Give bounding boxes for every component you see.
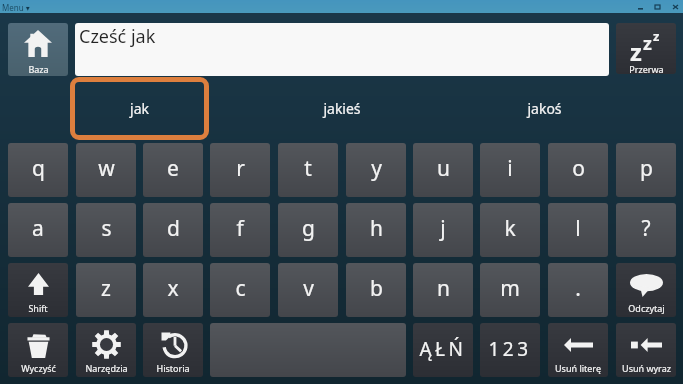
button[interactable]: c — [210, 263, 270, 317]
staticText: Historia — [156, 362, 190, 374]
button[interactable]: g — [278, 203, 338, 257]
button[interactable]: j — [413, 203, 473, 257]
staticText: Narzędzia — [85, 362, 128, 374]
button[interactable]: 123 — [480, 323, 540, 377]
button[interactable]: q — [8, 143, 68, 197]
button[interactable]: n — [413, 263, 473, 317]
button[interactable]: Narzędzia — [76, 323, 136, 377]
button[interactable]: Historia — [143, 323, 203, 377]
staticText: c — [235, 274, 246, 303]
staticText: z — [101, 274, 111, 303]
button[interactable]: y — [346, 143, 406, 197]
staticText: jakoś — [527, 99, 562, 118]
staticText: Wyczyść — [21, 362, 56, 374]
staticText: q — [32, 154, 45, 183]
staticText: m — [500, 274, 520, 303]
button[interactable]: a — [8, 203, 68, 257]
button[interactable]: Przerwa — [616, 23, 676, 74]
staticText: Menu ▾ — [2, 2, 30, 13]
staticText: Usuń wyraz — [622, 362, 671, 374]
staticText: f — [236, 214, 244, 243]
staticText: p — [640, 154, 653, 183]
staticText: z — [643, 31, 652, 56]
staticText: z — [653, 27, 660, 45]
button[interactable]: i — [480, 143, 540, 197]
staticText: . — [575, 274, 581, 303]
button[interactable]: Usuń wyraz — [616, 323, 676, 377]
staticText: r — [236, 154, 245, 183]
button[interactable]: m — [480, 263, 540, 317]
button[interactable]: Usuń literę — [548, 323, 608, 377]
button[interactable]: Baza — [8, 23, 68, 76]
staticText: 123 — [488, 336, 532, 362]
staticText: Cześć jak — [79, 24, 156, 49]
staticText: Baza — [28, 63, 49, 75]
staticText: jak — [130, 99, 149, 118]
button[interactable]: Odczytaj — [616, 263, 676, 317]
staticText: Shift — [28, 302, 48, 314]
staticText: j — [440, 214, 446, 243]
button[interactable]: b — [346, 263, 406, 317]
staticText: h — [370, 214, 383, 243]
button[interactable]: v — [278, 263, 338, 317]
staticText: w — [98, 154, 115, 183]
staticText: u — [437, 154, 450, 183]
button[interactable]: Minimize — [633, 0, 649, 13]
staticText: x — [167, 274, 179, 303]
button[interactable]: h — [346, 203, 406, 257]
staticText: k — [504, 214, 516, 243]
staticText: i — [507, 154, 513, 183]
button[interactable]: Wyczyść — [8, 323, 68, 377]
button[interactable]: ĄŁŃ — [413, 323, 473, 377]
staticText: y — [371, 154, 382, 183]
button[interactable]: . — [548, 263, 608, 317]
staticText: jakieś — [323, 99, 361, 118]
button[interactable]: d — [143, 203, 203, 257]
staticText: e — [167, 154, 179, 183]
button[interactable]: Maximize — [650, 0, 666, 13]
button[interactable]: ? — [616, 203, 676, 257]
staticText: v — [303, 274, 314, 303]
staticText: z — [630, 35, 642, 68]
button[interactable]: o — [548, 143, 608, 197]
staticText: n — [437, 274, 450, 303]
button[interactable]: s — [76, 203, 136, 257]
staticText: o — [572, 154, 585, 183]
button[interactable]: l — [548, 203, 608, 257]
button[interactable]: x — [143, 263, 203, 317]
button[interactable]: r — [210, 143, 270, 197]
button[interactable]: z — [76, 263, 136, 317]
staticText: s — [101, 214, 112, 243]
button[interactable]: e — [143, 143, 203, 197]
staticText: d — [167, 214, 180, 243]
staticText: ? — [641, 214, 651, 243]
button[interactable]: jakieś — [240, 77, 443, 140]
button[interactable]: Cześć jak — [75, 23, 609, 76]
button[interactable]: Menu ▾ — [2, 2, 30, 13]
button[interactable]: w — [76, 143, 136, 197]
staticText: Usuń literę — [555, 362, 601, 374]
staticText: ĄŁŃ — [419, 336, 467, 362]
button[interactable]: t — [278, 143, 338, 197]
button[interactable]: f — [210, 203, 270, 257]
staticText: a — [32, 214, 44, 243]
staticText: l — [575, 214, 581, 243]
staticText: b — [370, 274, 383, 303]
staticText: Odczytaj — [628, 302, 665, 314]
button[interactable]: jak — [70, 77, 209, 140]
staticText: t — [304, 154, 312, 183]
button[interactable]: k — [480, 203, 540, 257]
button[interactable]: Spacja — [210, 323, 406, 377]
staticText: Przerwa — [629, 63, 664, 74]
button[interactable]: Shift — [8, 263, 68, 317]
button[interactable]: p — [616, 143, 676, 197]
button[interactable]: u — [413, 143, 473, 197]
button[interactable]: jakoś — [443, 77, 646, 140]
staticText: g — [302, 214, 315, 243]
button[interactable]: Close — [668, 0, 683, 13]
